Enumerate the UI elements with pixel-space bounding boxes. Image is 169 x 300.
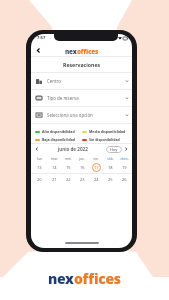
staticText: 17 <box>94 165 99 170</box>
staticText: Media disponibilidad <box>89 129 126 134</box>
button[interactable]: Tipo de reserva <box>31 90 132 106</box>
staticText: mié. <box>65 156 72 161</box>
staticText: Sin disponibilidad <box>89 137 120 142</box>
staticText: vie. <box>93 156 99 161</box>
staticText: 13 <box>37 165 42 170</box>
button[interactable]: sáb. <box>103 154 117 173</box>
button[interactable]: 24 <box>89 174 103 185</box>
staticText: offices <box>74 269 121 288</box>
button[interactable]: 26 <box>117 174 131 185</box>
staticText: Selecciona una opción <box>47 112 93 118</box>
button[interactable]: mié. <box>61 154 75 173</box>
button[interactable]: Hoy <box>106 146 122 153</box>
staticText: Alta disponibilidad <box>42 129 75 134</box>
button[interactable]: 21 <box>47 174 61 185</box>
button[interactable]: dom. <box>117 154 131 173</box>
staticText: 20 <box>37 177 42 182</box>
button[interactable]: Previous month <box>33 145 41 153</box>
staticText: 14 <box>52 165 57 170</box>
button[interactable]: 23 <box>75 174 89 185</box>
staticText: dom. <box>120 156 129 161</box>
staticText: sáb. <box>107 156 114 161</box>
staticText: 25 <box>108 177 113 182</box>
staticText: 26 <box>122 177 127 182</box>
staticText: 7:57 <box>37 35 46 41</box>
staticText: 18 <box>108 165 113 170</box>
button[interactable]: Back <box>32 44 45 57</box>
button[interactable]: mar. <box>47 154 61 173</box>
staticText: Hoy <box>110 147 118 152</box>
button[interactable]: 22 <box>61 174 75 185</box>
button[interactable]: 25 <box>103 174 117 185</box>
button[interactable]: vie. <box>89 154 103 173</box>
staticText: Centro <box>47 78 61 84</box>
button[interactable]: lun. <box>32 154 47 173</box>
staticText: 19 <box>122 165 127 170</box>
button[interactable]: Centro <box>31 73 132 89</box>
button[interactable]: Next month <box>122 145 130 153</box>
staticText: mar. <box>51 156 58 161</box>
staticText: 22 <box>66 177 71 182</box>
staticText: Reservaciones <box>63 61 101 68</box>
staticText: nex <box>65 47 77 56</box>
staticText: 24 <box>94 177 99 182</box>
staticText: 23 <box>80 177 85 182</box>
staticText: offices <box>77 47 99 56</box>
staticText: junio de 2022 <box>58 146 88 152</box>
staticText: 15 <box>66 165 71 170</box>
staticText: Baja disponibilidad <box>42 137 76 142</box>
staticText: jue. <box>79 156 85 161</box>
staticText: nex <box>48 269 74 288</box>
staticText: Tipo de reserva <box>47 95 79 101</box>
staticText: 16 <box>80 165 85 170</box>
button[interactable]: Selecciona una opción <box>31 107 132 123</box>
staticText: lun. <box>37 156 43 161</box>
staticText: 21 <box>52 177 57 182</box>
button[interactable]: jue. <box>75 154 89 173</box>
button[interactable]: 20 <box>32 174 47 185</box>
